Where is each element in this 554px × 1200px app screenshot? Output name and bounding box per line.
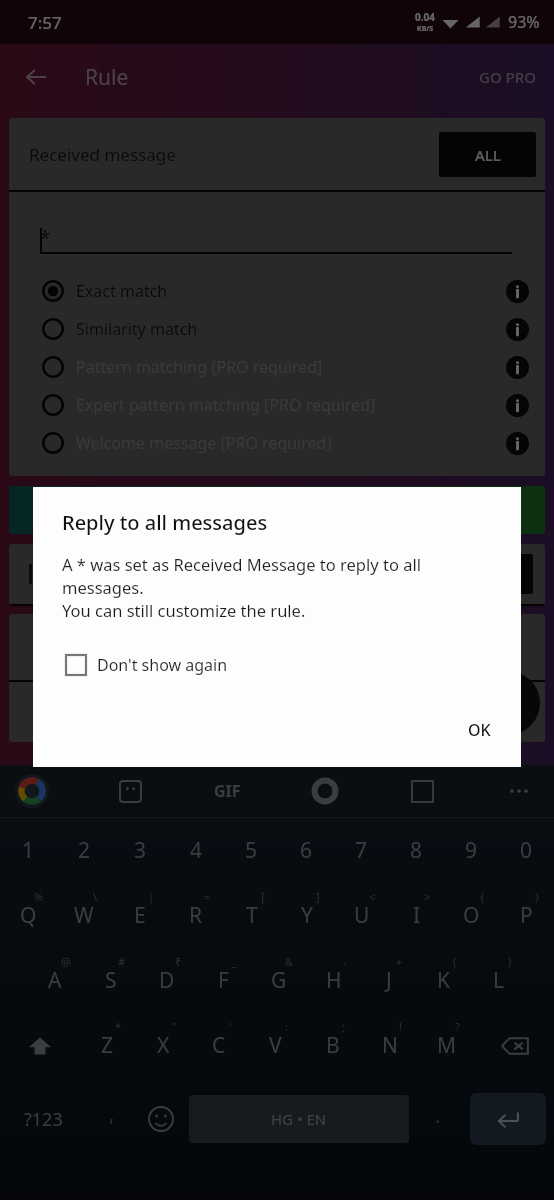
button[interactable]: ] <box>279 883 334 948</box>
button[interactable]: # <box>83 948 139 1013</box>
button[interactable]: ' <box>191 1013 247 1078</box>
button[interactable]: ALL <box>439 132 536 177</box>
button[interactable]: Expert pattern matching [PRO required] <box>9 386 545 424</box>
button[interactable]: GIF <box>206 772 249 810</box>
button[interactable]: HG • EN <box>189 1095 409 1143</box>
button[interactable]: Save rule <box>476 671 540 735</box>
button[interactable]: ( <box>416 948 471 1013</box>
button[interactable]: % <box>0 883 56 948</box>
button[interactable]: Info <box>499 425 535 461</box>
button[interactable]: Info <box>499 273 535 309</box>
staticText: G <box>271 966 287 995</box>
staticText: ( <box>453 954 457 969</box>
button[interactable]: OK <box>452 710 507 750</box>
button[interactable]: @ <box>27 948 83 1013</box>
staticText: ?123 <box>24 1107 63 1132</box>
staticText: Exact match <box>76 280 168 302</box>
staticText: 7 <box>355 836 368 865</box>
button[interactable]: & <box>251 948 306 1013</box>
button[interactable]: Back <box>14 55 58 99</box>
button[interactable]: Pattern matching [PRO required] <box>9 348 545 386</box>
button[interactable]: 3 <box>112 818 168 883</box>
button[interactable]: Exact match <box>9 272 545 310</box>
staticText: 2 <box>78 836 91 865</box>
button[interactable]: Similarity match <box>9 310 545 348</box>
staticText: P <box>520 901 533 930</box>
button[interactable]: 7 <box>334 818 389 883</box>
staticText: E <box>134 901 146 930</box>
button[interactable] <box>9 486 545 534</box>
staticText: Welcome message [PRO required] <box>76 432 332 454</box>
staticText: # <box>118 954 126 969</box>
button[interactable]: 2 <box>56 818 112 883</box>
button[interactable]: Translate <box>401 770 443 812</box>
staticText: % <box>34 889 44 904</box>
button[interactable]: 8 <box>389 818 444 883</box>
button[interactable]: < <box>334 883 389 948</box>
button[interactable]: 1 <box>0 818 56 883</box>
button[interactable]: ) <box>471 948 526 1013</box>
button[interactable]: 6 <box>279 818 334 883</box>
button[interactable]: > <box>389 883 444 948</box>
staticText: | <box>148 889 155 904</box>
button[interactable]: : <box>247 1013 304 1078</box>
button[interactable]: More options <box>498 770 540 812</box>
button[interactable]: ! <box>361 1013 418 1078</box>
button[interactable]: - <box>306 948 361 1013</box>
button[interactable]: \ <box>56 883 112 948</box>
button[interactable]: Stickers <box>109 770 151 812</box>
button[interactable]: Don't show again <box>55 644 244 686</box>
button[interactable]: 5 <box>224 818 279 883</box>
staticText: * <box>115 1019 122 1034</box>
button[interactable]: = <box>168 883 224 948</box>
staticText: U <box>354 901 370 930</box>
button[interactable]: Info <box>499 349 535 385</box>
staticText: \ <box>93 889 98 904</box>
button[interactable]: Google <box>10 769 54 813</box>
staticText: O <box>463 901 480 930</box>
button[interactable]: ?123 <box>0 1078 87 1160</box>
staticText: 5 <box>245 836 258 865</box>
staticText: Z <box>101 1031 114 1060</box>
button[interactable]: " <box>135 1013 191 1078</box>
button[interactable]: Shift <box>0 1013 79 1078</box>
button[interactable]: GO PRO <box>469 57 546 97</box>
button[interactable]: [ <box>224 883 279 948</box>
staticText: Pattern matching [PRO required] <box>76 356 323 378</box>
button[interactable]: Settings <box>304 770 346 812</box>
button[interactable]: 4 <box>168 818 224 883</box>
button[interactable]: Enter <box>470 1093 546 1145</box>
staticText: F <box>218 966 229 995</box>
staticText: , <box>109 1100 115 1127</box>
button[interactable]: _ <box>195 948 251 1013</box>
button[interactable]: } <box>499 883 554 948</box>
staticText: + <box>396 954 403 969</box>
staticText: _ <box>232 954 237 969</box>
staticText: Q <box>20 901 37 930</box>
button[interactable]: Emoji <box>136 1078 185 1160</box>
button[interactable]: Info <box>499 311 535 347</box>
button[interactable]: ₹ <box>139 948 195 1013</box>
button[interactable]: ; <box>304 1013 361 1078</box>
staticText: ? <box>455 1019 460 1034</box>
staticText: R <box>189 901 203 930</box>
button[interactable]: 0 <box>499 818 554 883</box>
button[interactable]: Backspace <box>475 1013 554 1078</box>
staticText: } <box>535 889 540 904</box>
staticText: W <box>74 901 94 930</box>
button[interactable]: { <box>444 883 499 948</box>
button[interactable]: Info <box>499 387 535 423</box>
staticText: K <box>437 966 450 995</box>
staticText: H <box>326 966 342 995</box>
staticText: Received message <box>29 143 176 166</box>
staticText: { <box>480 889 485 904</box>
button[interactable]: | <box>112 883 168 948</box>
button[interactable]: * <box>79 1013 135 1078</box>
staticText: & <box>285 954 294 969</box>
button[interactable]: Welcome message [PRO required] <box>9 424 545 462</box>
button[interactable]: ? <box>418 1013 475 1078</box>
button[interactable]: + <box>361 948 416 1013</box>
button[interactable]: 9 <box>444 818 499 883</box>
